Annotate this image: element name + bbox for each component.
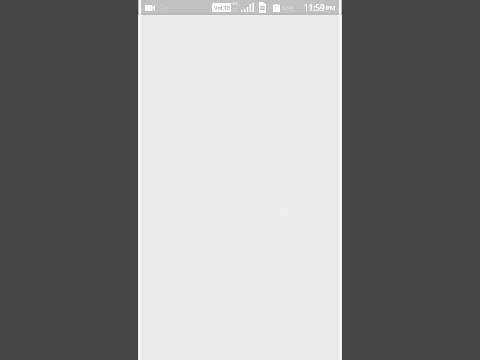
other: Mobile data — [232, 1, 238, 13]
staticText: VoLTE — [214, 4, 230, 11]
staticText: 4G — [232, 1, 238, 7]
other: SIM card — [259, 2, 266, 13]
staticText: PM — [326, 4, 336, 12]
staticText: 63% — [282, 4, 294, 12]
other: Battery — [273, 4, 280, 12]
staticText: 11:59 — [304, 2, 325, 13]
other: Screen recording — [145, 5, 155, 11]
other: Signal strength — [241, 3, 254, 12]
